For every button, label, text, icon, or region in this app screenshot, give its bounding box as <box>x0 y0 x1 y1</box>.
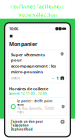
staticText: Confirmez facilement <box>10 3 64 10</box>
staticText: J'ajoute un don pour l'association <box>11 120 43 127</box>
staticText: accompagnement : les <box>11 63 56 68</box>
staticText: Horaires de collecte <box>9 86 48 91</box>
staticText: 16 Rue Grenelle, 75000 Paris <box>17 107 54 114</box>
button[interactable]: Augmenter <box>60 76 64 80</box>
staticText: 1 <box>56 76 58 81</box>
staticText: Gratuit <box>11 76 20 80</box>
staticText: 10:06 <box>9 26 18 31</box>
button[interactable]: Diminuer <box>51 77 54 80</box>
staticText: votre sélection <box>18 11 56 18</box>
button[interactable]: Fermer <box>9 34 13 38</box>
staticText: Dephinedfood <box>11 128 33 131</box>
button[interactable]: Supprimer <box>60 52 64 56</box>
staticText: 11:00 - 12:00 <box>26 92 47 95</box>
staticText: micro-poussins <box>11 69 43 74</box>
staticText: Le panier : cheffe point verte <box>17 99 52 106</box>
button[interactable]: J'ajoute un don pour l'association <box>9 118 66 133</box>
staticText: − <box>52 76 54 81</box>
button[interactable]: Le panier : cheffe point verte <box>9 98 66 116</box>
staticText: Samedi 12 <box>9 92 25 95</box>
staticText: Mon panier <box>9 40 37 47</box>
staticText: Super vêtements pour <box>11 52 45 63</box>
staticText: + <box>61 76 63 81</box>
